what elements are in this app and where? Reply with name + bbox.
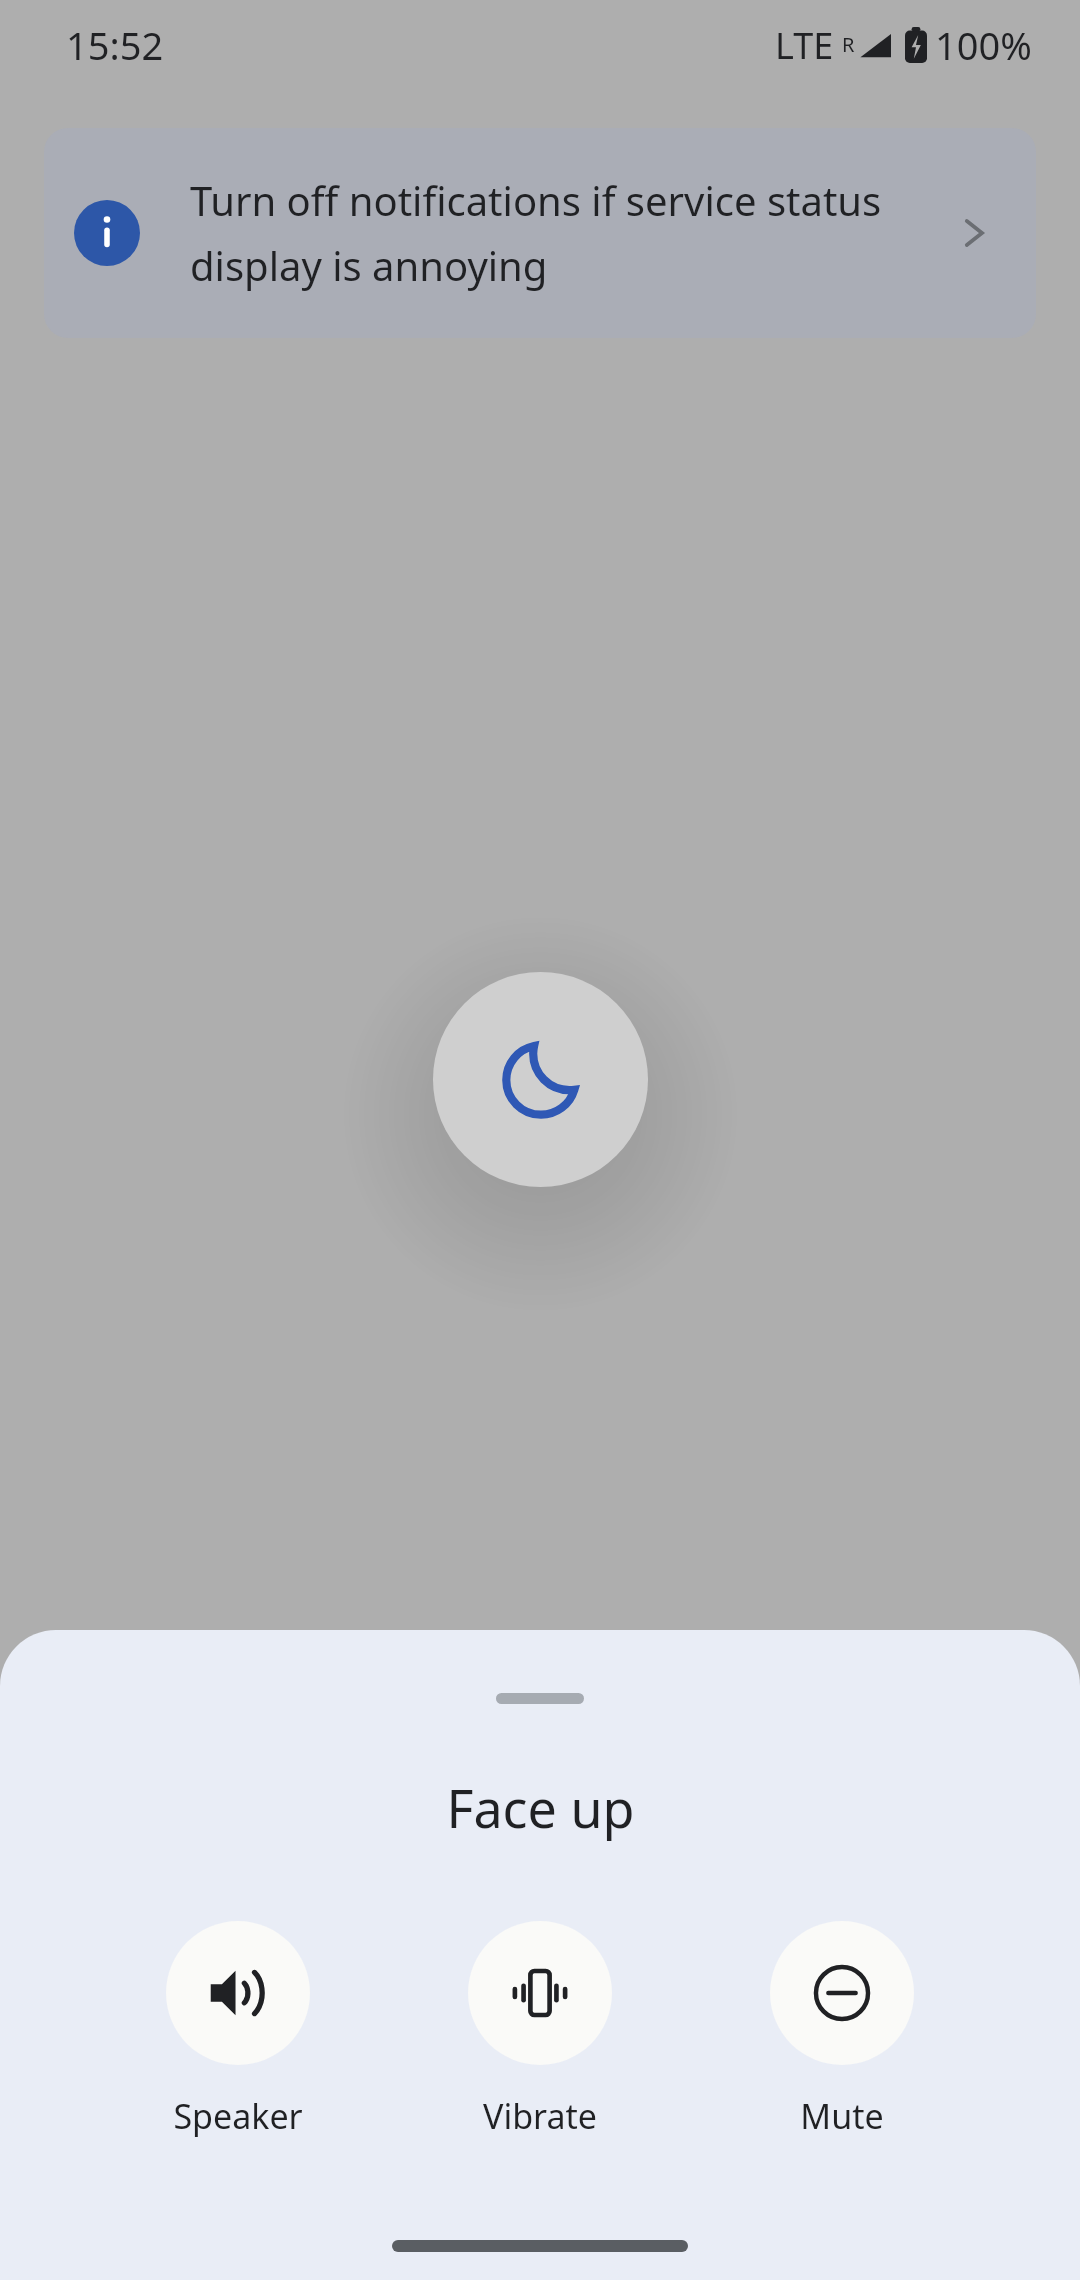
- button[interactable]: Turn off notifications if service status…: [44, 128, 1036, 338]
- staticText: Face up: [446, 1772, 635, 1843]
- button[interactable]: Mute: [739, 1921, 945, 2139]
- other: Open notification settings: [942, 201, 1006, 265]
- staticText: Turn off notifications if service status…: [190, 173, 926, 293]
- staticText: 100%: [935, 19, 1032, 71]
- staticText: R: [842, 31, 855, 58]
- staticText: 15:52: [66, 19, 164, 71]
- button[interactable]: Vibrate: [437, 1921, 643, 2139]
- button[interactable]: Speaker: [135, 1921, 341, 2139]
- staticText: Mute: [800, 2093, 884, 2139]
- button[interactable]: Do Not Disturb: [433, 972, 648, 1187]
- staticText: Vibrate: [483, 2093, 597, 2139]
- staticText: Speaker: [173, 2093, 303, 2139]
- staticText: LTE: [775, 21, 834, 70]
